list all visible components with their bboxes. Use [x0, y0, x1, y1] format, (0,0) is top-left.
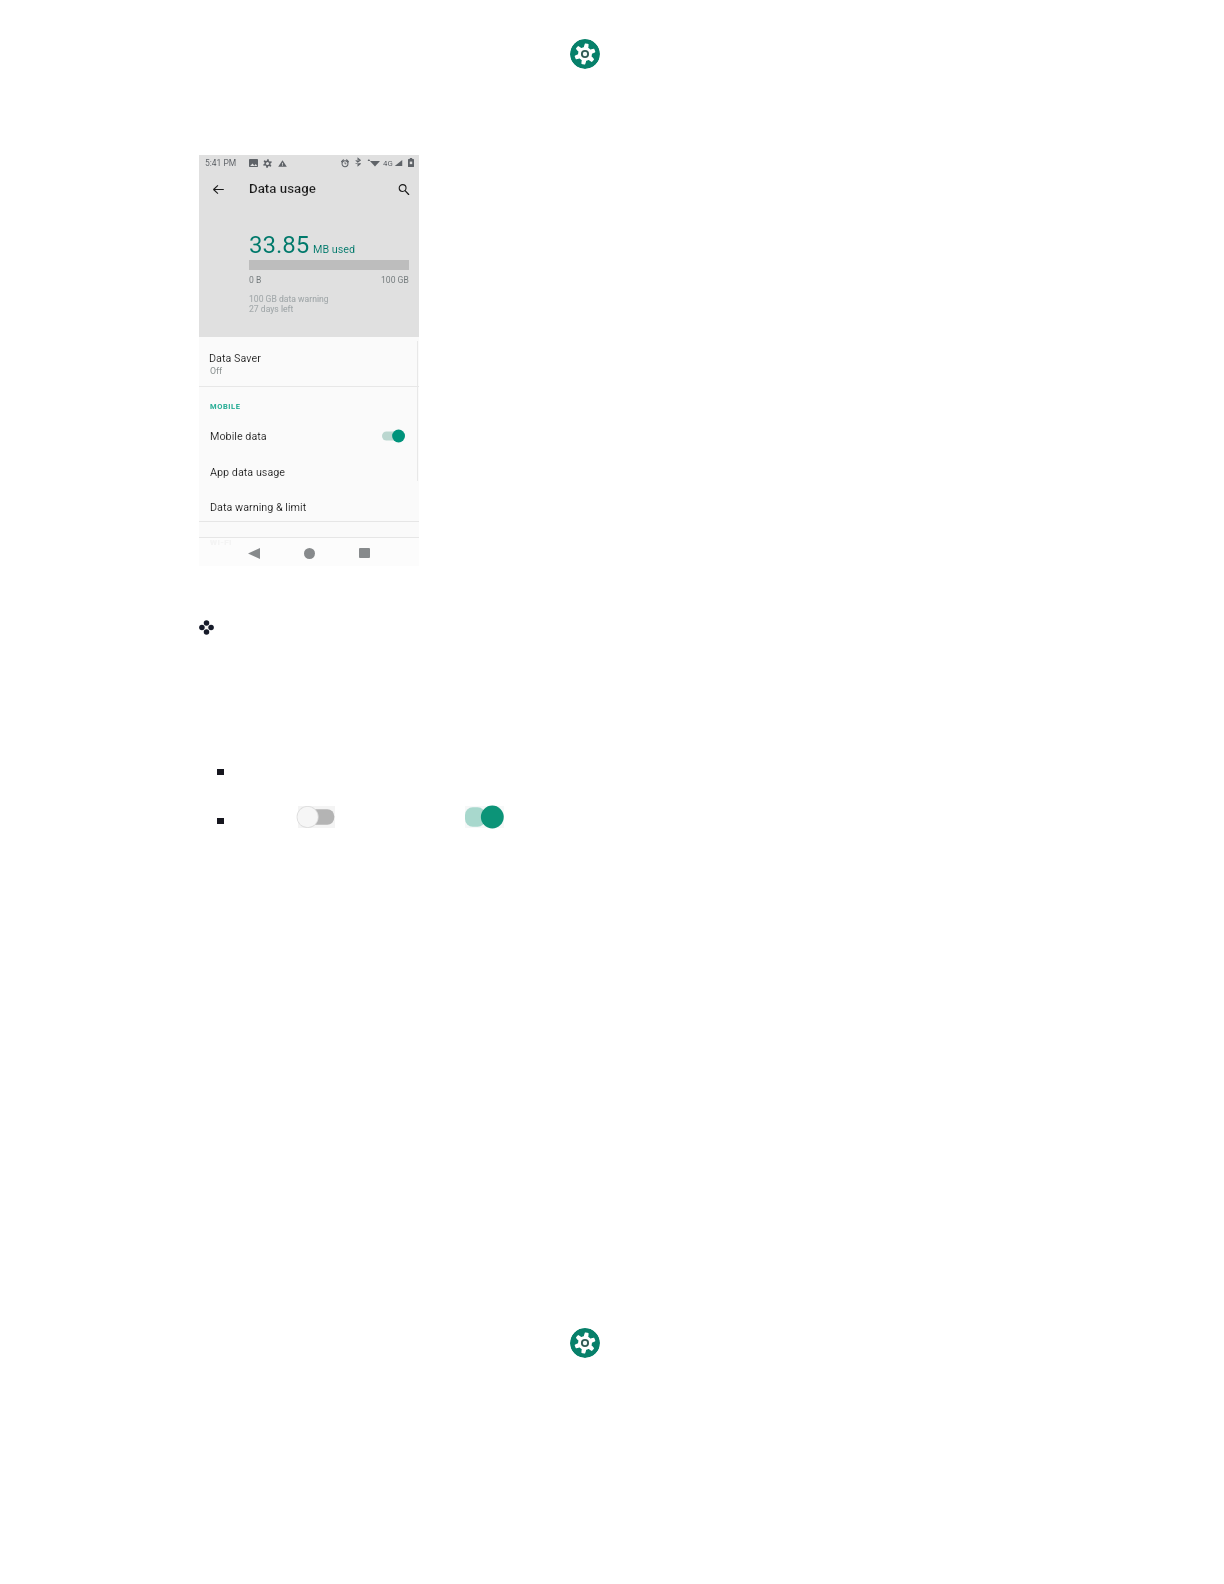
button[interactable]: Home — [299, 543, 319, 563]
staticText: 100 GB — [381, 275, 409, 285]
button[interactable]: Settings — [570, 39, 600, 69]
staticText: 33.85 — [249, 231, 310, 259]
staticText: App data usage — [210, 466, 286, 479]
staticText: WI-FI — [210, 538, 233, 547]
button[interactable]: Data Saver — [199, 338, 419, 383]
staticText: MB used — [313, 243, 356, 256]
staticText: Data usage — [249, 181, 316, 197]
button[interactable]: Data warning & limit — [199, 492, 419, 522]
staticText: MOBILE — [210, 402, 241, 411]
button[interactable]: Decorative icon — [199, 620, 214, 635]
button[interactable]: Back — [244, 543, 264, 563]
button[interactable]: Settings — [570, 1328, 600, 1358]
button[interactable]: App data usage — [199, 457, 419, 487]
staticText: 5:41 PM — [205, 158, 237, 168]
button[interactable]: Mobile data — [199, 421, 419, 451]
staticText: 100 GB data warning — [249, 294, 329, 304]
button[interactable]: Back — [208, 179, 228, 199]
staticText: 0 B — [249, 275, 262, 285]
staticText: Data warning & limit — [210, 501, 307, 514]
staticText: Mobile data — [210, 430, 267, 443]
staticText: 27 days left — [249, 304, 294, 314]
staticText: 4G — [383, 159, 393, 168]
button[interactable]: Switch off — [298, 806, 335, 828]
button[interactable]: Switch on — [465, 806, 504, 828]
button[interactable]: Search — [393, 179, 413, 199]
button[interactable]: Recent apps — [354, 543, 374, 563]
staticText: Off — [210, 366, 223, 376]
staticText: Data Saver — [209, 352, 261, 365]
